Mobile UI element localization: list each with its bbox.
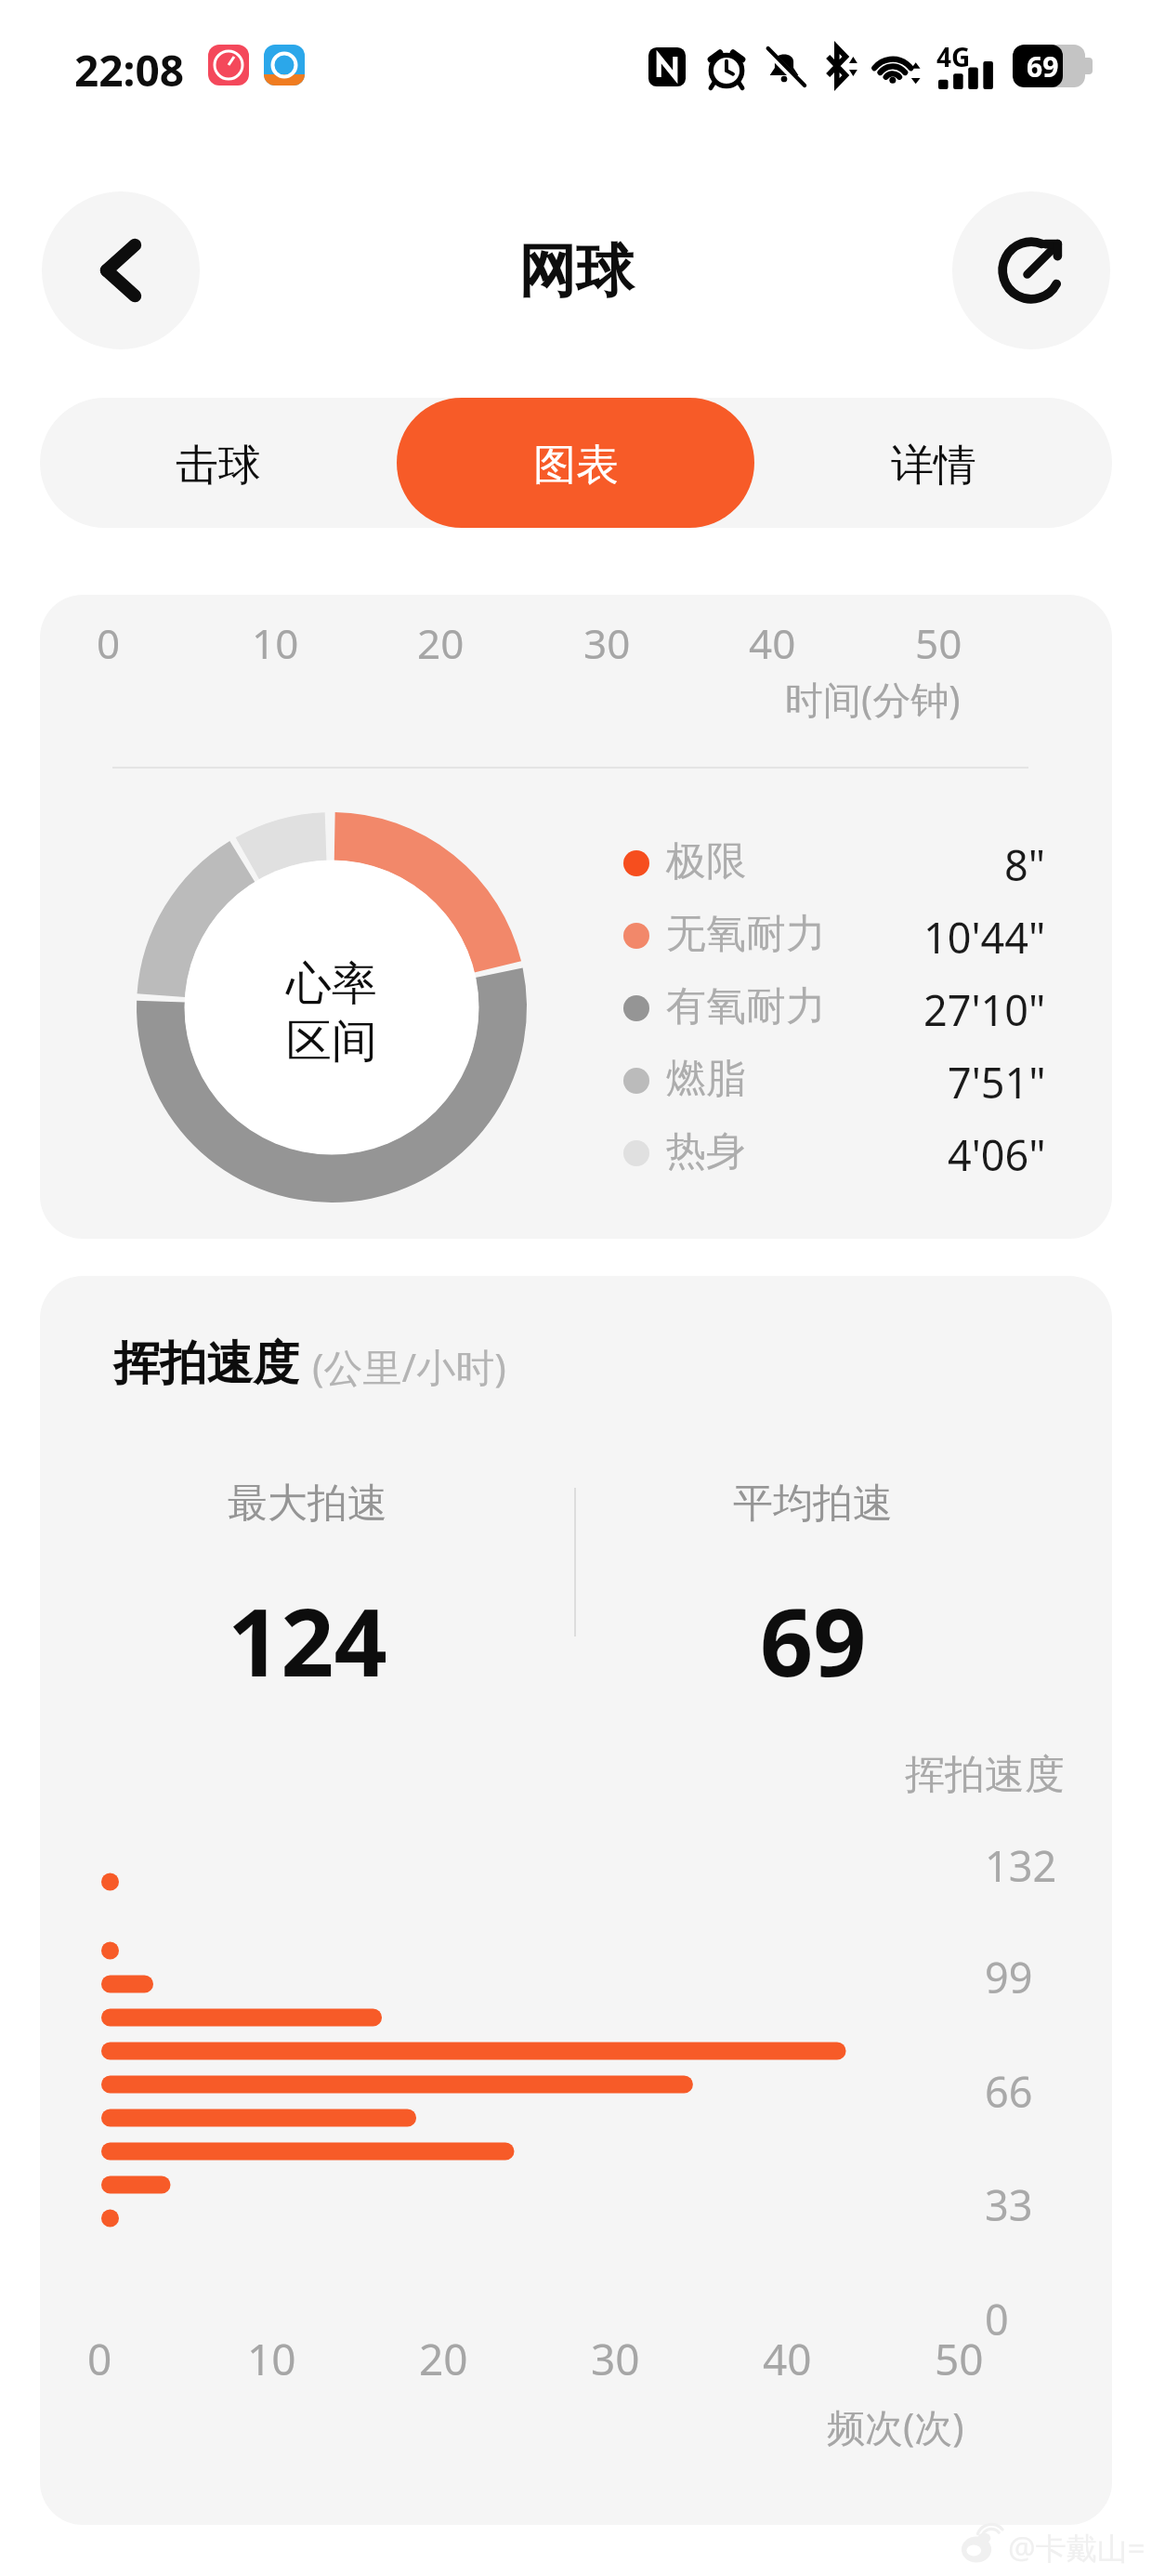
staticText: 10 [247,2330,296,2388]
staticText: 30 [591,2330,640,2388]
staticText: 区间 [286,1013,377,1071]
staticText: 99 [985,1949,1033,2005]
staticText: 50 [935,2330,984,2388]
staticText: 132 [985,1837,1057,1894]
staticText: 0 [985,2291,1009,2347]
staticText: 燃脂 [666,1054,746,1104]
staticText: 10 [252,615,299,671]
button[interactable]: Back [42,191,200,349]
staticText: 图表 [533,439,619,493]
staticText: 时间(分钟) [785,673,961,725]
staticText: 0 [87,2330,112,2388]
staticText: 极限 [666,836,746,887]
button[interactable]: 详情 [754,398,1112,528]
staticText: 心率 [286,955,377,1013]
staticText: 击球 [176,439,261,493]
staticText: 热身 [666,1126,746,1176]
staticText: 详情 [891,439,976,493]
staticText: 频次(次) [827,2400,964,2452]
staticText: 网球 [518,235,634,308]
staticText: 4G [936,39,971,74]
staticText: 40 [763,2330,812,2388]
staticText: 挥拍速度 [905,1750,1065,1800]
staticText: (公里/小时) [312,1340,506,1393]
staticText: 69 [760,1577,867,1703]
staticText: 22:08 [74,41,185,99]
button[interactable]: 击球 [40,398,397,528]
staticText: 50 [915,615,962,671]
staticText: 8" [1004,836,1046,893]
staticText: 30 [583,615,631,671]
staticText: 33 [985,2176,1033,2233]
staticText: 0 [97,615,121,671]
staticText: @卡戴山= [1008,2527,1145,2569]
staticText: 69 [1027,47,1059,85]
staticText: 124 [228,1577,387,1703]
staticText: 平均拍速 [733,1479,893,1529]
staticText: 66 [985,2063,1033,2120]
staticText: 4'06" [948,1126,1046,1183]
staticText: 最大拍速 [228,1479,387,1529]
staticText: 40 [749,615,796,671]
button[interactable]: 图表 [397,398,754,528]
staticText: 27'10" [923,981,1046,1038]
staticText: 无氧耐力 [666,909,826,959]
staticText: 7'51" [948,1054,1046,1111]
staticText: 挥拍速度 [113,1334,299,1393]
staticText: 20 [419,2330,468,2388]
staticText: 有氧耐力 [666,981,826,1032]
staticText: 10'44" [923,909,1046,966]
button[interactable]: Share [952,191,1110,349]
staticText: 20 [417,615,465,671]
